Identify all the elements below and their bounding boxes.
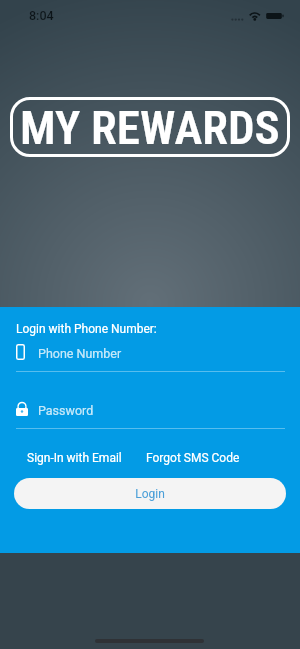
button[interactable]: Phone number — [0, 336, 300, 367]
staticText: Sign-In with Email — [27, 451, 122, 465]
button[interactable]: Password — [0, 393, 300, 424]
staticText: Login — [135, 487, 165, 501]
other: Phone number — [16, 344, 25, 360]
staticText: Forgot SMS Code — [146, 451, 240, 465]
button[interactable]: Login — [14, 478, 286, 509]
staticText: Password — [38, 403, 94, 418]
staticText: Phone Number — [38, 346, 122, 361]
other: Password — [16, 402, 28, 416]
button[interactable]: Sign-In with Email — [19, 447, 130, 469]
staticText: Login with Phone Number: — [16, 322, 157, 336]
staticText: 8:04 — [29, 8, 54, 23]
button[interactable]: Forgot SMS Code — [138, 447, 248, 469]
staticText: MY REWARDS — [20, 100, 280, 155]
